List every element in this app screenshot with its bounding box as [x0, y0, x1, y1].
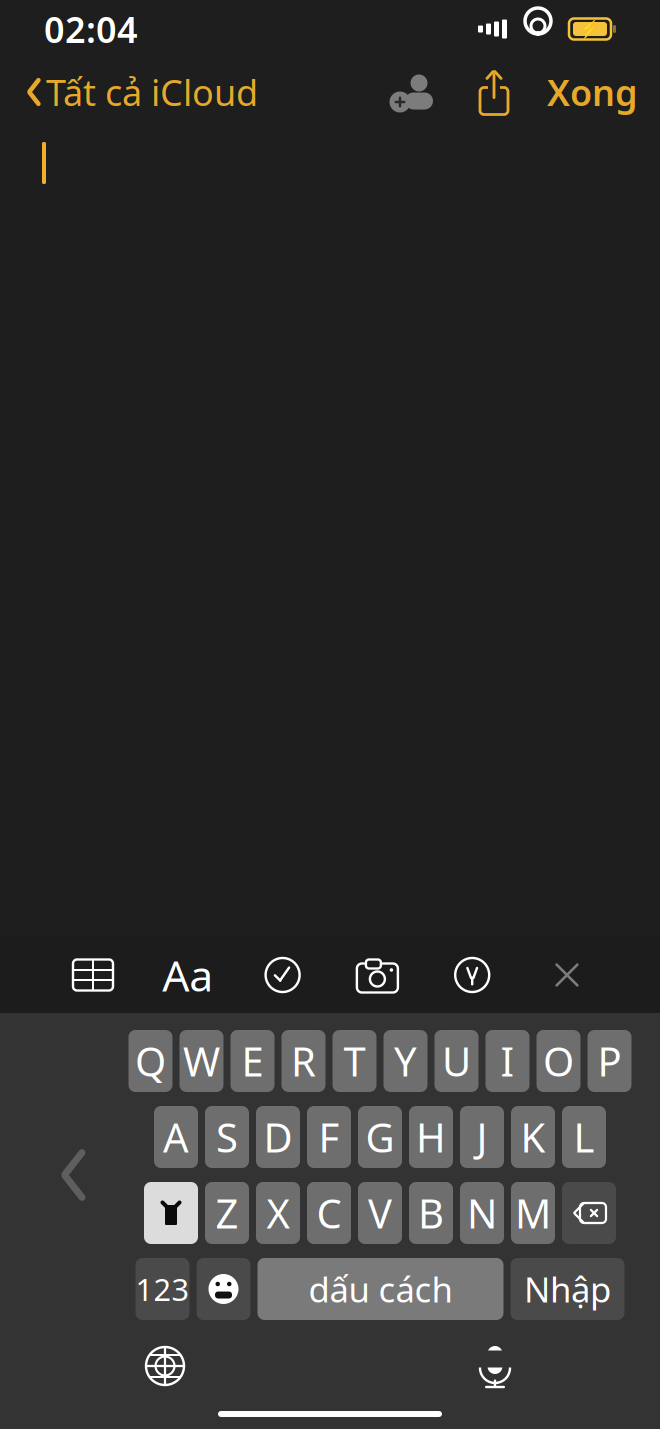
staticText: O: [543, 1034, 574, 1087]
staticText: 02:04: [44, 5, 138, 53]
staticText: Tất cả iCloud: [46, 68, 258, 116]
button[interactable]: Dictation: [464, 1335, 526, 1397]
button[interactable]: K: [511, 1106, 555, 1168]
staticText: L: [573, 1110, 594, 1163]
button[interactable]: Checklist: [246, 944, 320, 1006]
staticText: H: [416, 1110, 446, 1163]
staticText: P: [597, 1034, 621, 1087]
staticText: X: [266, 1186, 289, 1239]
staticText: R: [291, 1034, 316, 1087]
button[interactable]: Delete: [562, 1182, 616, 1244]
staticText: A: [163, 1110, 189, 1163]
button[interactable]: J: [460, 1106, 504, 1168]
button[interactable]: Expand Keyboard: [18, 1025, 128, 1325]
staticText: U: [442, 1034, 471, 1087]
staticText: B: [418, 1186, 444, 1239]
button[interactable]: S: [205, 1106, 249, 1168]
staticText: F: [318, 1110, 339, 1163]
staticText: 123: [135, 1269, 189, 1309]
button[interactable]: Add People: [385, 69, 439, 115]
button[interactable]: Shift: [144, 1182, 198, 1244]
button[interactable]: C: [307, 1182, 351, 1244]
button[interactable]: Table: [56, 944, 130, 1006]
staticText: C: [316, 1186, 341, 1239]
button[interactable]: L: [562, 1106, 606, 1168]
staticText: K: [520, 1110, 545, 1163]
staticText: Y: [394, 1034, 417, 1087]
button[interactable]: O: [536, 1030, 580, 1092]
button[interactable]: Y: [383, 1030, 427, 1092]
staticText: W: [183, 1034, 220, 1087]
staticText: D: [263, 1110, 292, 1163]
button[interactable]: Share: [467, 69, 521, 115]
staticText: J: [476, 1110, 487, 1163]
button[interactable]: Tất cả iCloud: [22, 58, 262, 126]
staticText: dấu cách: [308, 1266, 452, 1312]
staticText: S: [216, 1110, 238, 1163]
button[interactable]: Format: [151, 944, 225, 1006]
button[interactable]: R: [281, 1030, 325, 1092]
button[interactable]: Next Keyboard: [134, 1335, 196, 1397]
button[interactable]: Camera: [340, 944, 414, 1006]
button[interactable]: Xong: [521, 58, 638, 126]
button[interactable]: D: [256, 1106, 300, 1168]
button[interactable]: B: [409, 1182, 453, 1244]
button[interactable]: Close Keyboard: [530, 944, 604, 1006]
button[interactable]: T: [332, 1030, 376, 1092]
button[interactable]: W: [179, 1030, 223, 1092]
button[interactable]: Markup: [435, 944, 509, 1006]
staticText: T: [343, 1034, 365, 1087]
button[interactable]: H: [409, 1106, 453, 1168]
staticText: Aa: [162, 947, 213, 1003]
button[interactable]: 123: [135, 1258, 189, 1320]
button[interactable]: N: [460, 1182, 504, 1244]
staticText: Nhập: [524, 1266, 611, 1312]
button[interactable]: G: [358, 1106, 402, 1168]
button[interactable]: Emoji: [196, 1258, 250, 1320]
button[interactable]: E: [230, 1030, 274, 1092]
staticText: V: [368, 1186, 392, 1239]
button[interactable]: Z: [205, 1182, 249, 1244]
button[interactable]: U: [434, 1030, 478, 1092]
button[interactable]: M: [511, 1182, 555, 1244]
staticText: Q: [135, 1034, 166, 1087]
staticText: Xong: [547, 68, 638, 116]
button[interactable]: A: [154, 1106, 198, 1168]
staticText: ⚡: [579, 19, 601, 39]
button[interactable]: dấu cách: [257, 1258, 503, 1320]
button[interactable]: Q: [128, 1030, 172, 1092]
button[interactable]: X: [256, 1182, 300, 1244]
staticText: I: [500, 1034, 514, 1087]
staticText: E: [241, 1034, 263, 1087]
button[interactable]: P: [587, 1030, 631, 1092]
button[interactable]: V: [358, 1182, 402, 1244]
button[interactable]: Nhập: [510, 1258, 624, 1320]
button[interactable]: I: [485, 1030, 529, 1092]
button[interactable]: F: [307, 1106, 351, 1168]
staticText: N: [467, 1186, 497, 1239]
staticText: Z: [215, 1186, 238, 1239]
staticText: M: [515, 1186, 551, 1239]
staticText: G: [365, 1110, 394, 1163]
